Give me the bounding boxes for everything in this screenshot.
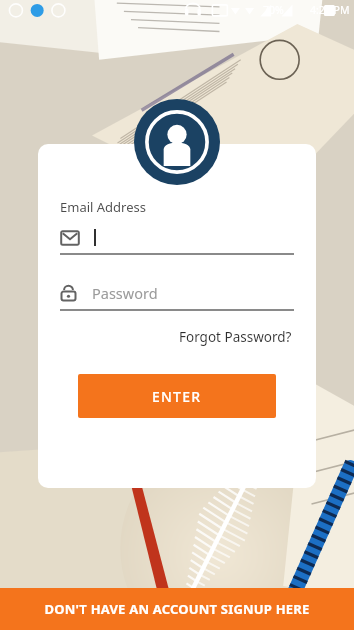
button[interactable]: DON'T HAVE AN ACCOUNT SIGNUP HERE [0,588,354,630]
button[interactable]: ENTER [78,374,276,418]
staticText: DON'T HAVE AN ACCOUNT SIGNUP HERE [44,600,310,618]
button[interactable]: Forgot Password? [177,326,294,348]
button[interactable] [60,229,294,246]
staticText: 4:27 PM [310,3,350,17]
other: User avatar [134,99,220,185]
staticText: Password [92,283,158,303]
staticText: Forgot Password? [179,328,292,346]
button[interactable]: Password [60,283,294,303]
staticText: Email Address [60,198,146,216]
staticText: ENTER [152,387,202,406]
staticText: 70% [263,3,284,17]
